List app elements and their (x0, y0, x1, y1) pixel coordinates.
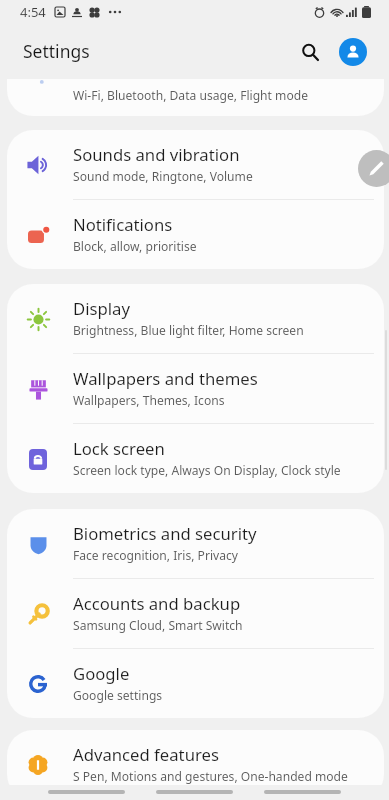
staticText: Sound mode, Ringtone, Volume (73, 168, 253, 184)
button[interactable]: Biometrics and security (7, 509, 384, 578)
staticText: Display (73, 297, 130, 320)
staticText: Screen lock type, Always On Display, Clo… (73, 462, 341, 478)
staticText: Google settings (73, 687, 163, 703)
button[interactable]: Advanced features (7, 730, 384, 800)
staticText: Advanced features (73, 743, 219, 766)
staticText: Sounds and vibration (73, 143, 240, 166)
button[interactable]: Recents (48, 790, 125, 794)
staticText: 4:54 (20, 3, 46, 21)
staticText: Wallpapers, Themes, Icons (73, 392, 225, 408)
button[interactable]: Edit (358, 150, 389, 187)
staticText: Face recognition, Iris, Privacy (73, 547, 238, 563)
button[interactable]: Account (339, 38, 367, 66)
staticText: Wi-Fi, Bluetooth, Data usage, Flight mod… (73, 87, 308, 103)
button[interactable]: Wi-Fi, Bluetooth, Data usage, Flight mod… (7, 79, 384, 116)
button[interactable]: Google (7, 649, 384, 718)
staticText: Settings (23, 39, 90, 63)
staticText: Wallpapers and themes (73, 367, 258, 390)
staticText: Lock screen (73, 437, 165, 460)
button[interactable]: Home (156, 790, 233, 794)
button[interactable]: Accounts and backup (7, 579, 384, 648)
button[interactable]: Lock screen (7, 424, 384, 493)
staticText: Block, allow, prioritise (73, 238, 197, 254)
staticText: Biometrics and security (73, 522, 257, 545)
button[interactable]: Back (264, 790, 341, 794)
staticText: S Pen, Motions and gestures, One-handed … (73, 768, 348, 784)
button[interactable]: Notifications (7, 200, 384, 269)
staticText: Accounts and backup (73, 592, 241, 615)
staticText: Notifications (73, 213, 173, 236)
button[interactable]: Wallpapers and themes (7, 354, 384, 423)
button[interactable]: Sounds and vibration (7, 130, 384, 199)
staticText: Brightness, Blue light filter, Home scre… (73, 322, 304, 338)
staticText: Samsung Cloud, Smart Switch (73, 617, 243, 633)
button[interactable]: Display (7, 284, 384, 353)
staticText: Google (73, 662, 130, 685)
button[interactable]: Search (295, 37, 325, 67)
